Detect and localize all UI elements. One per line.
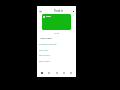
staticText: Get vaccine: [39, 54, 50, 57]
button[interactable]: Alerts: [60, 69, 67, 77]
staticText: Report result: [39, 60, 50, 62]
staticText: Symptom checker: [39, 43, 57, 46]
button[interactable]: More options: [69, 7, 77, 15]
button[interactable]: Scan: [53, 69, 60, 77]
staticText: 2m ago: [54, 32, 59, 34]
staticText: Track it: [54, 9, 63, 12]
button[interactable]: Profile: [67, 69, 74, 77]
button[interactable]: Home: [38, 69, 45, 77]
staticText: Find a test: [39, 49, 48, 51]
button[interactable]: Search: [45, 69, 52, 77]
staticText: Need help?: [40, 37, 52, 40]
staticText: ACTIVE: [46, 16, 50, 18]
button[interactable]: Exposure notifications are active: [42, 14, 71, 30]
button[interactable]: Open navigation menu: [36, 7, 44, 15]
